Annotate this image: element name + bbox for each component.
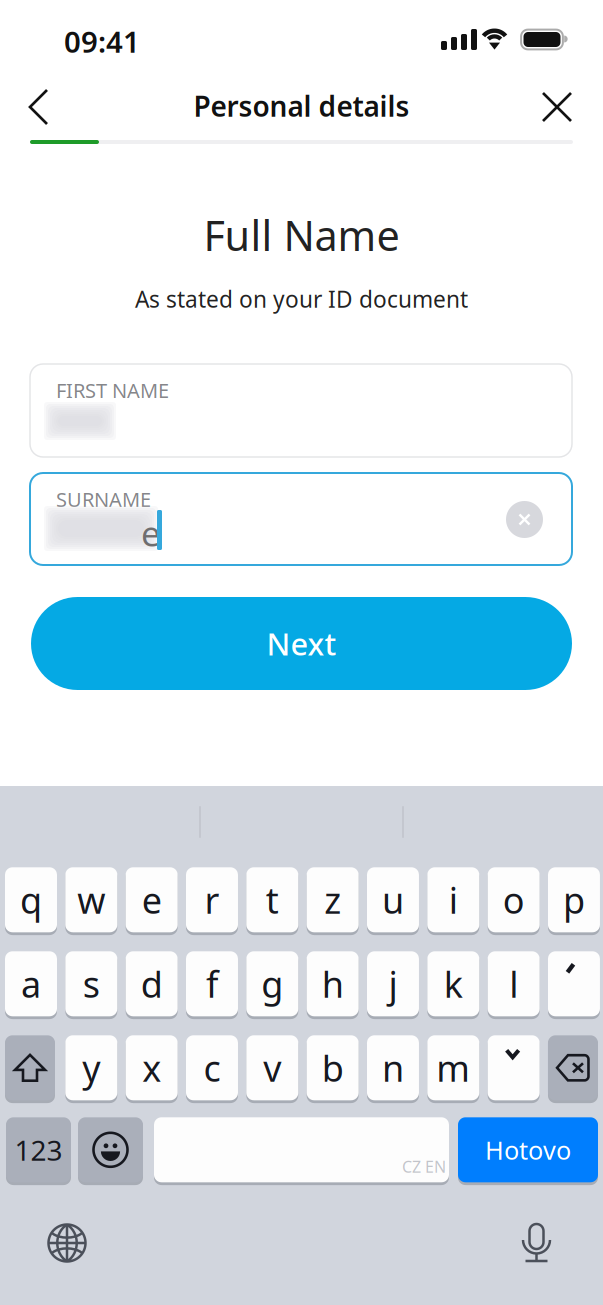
staticText: u xyxy=(382,876,404,924)
button[interactable]: Delete xyxy=(548,1036,598,1101)
button[interactable]: Acute accent xyxy=(548,952,600,1017)
staticText: y xyxy=(82,1044,100,1092)
button[interactable]: w xyxy=(65,868,117,933)
staticText: SURNAME xyxy=(56,486,151,513)
button[interactable]: k xyxy=(427,952,479,1017)
button[interactable]: s xyxy=(65,952,117,1017)
button[interactable]: u xyxy=(367,868,419,933)
button[interactable]: d xyxy=(126,952,178,1017)
button[interactable]: x xyxy=(126,1036,178,1101)
button[interactable]: t xyxy=(246,868,298,933)
staticText: e xyxy=(142,876,162,924)
staticText: c xyxy=(203,1044,220,1092)
staticText: CZ EN xyxy=(402,1156,446,1177)
button[interactable]: p xyxy=(548,868,600,933)
staticText: e xyxy=(141,510,161,556)
button[interactable]: Close xyxy=(531,83,583,131)
staticText: x xyxy=(142,1044,161,1092)
button[interactable]: Back xyxy=(14,80,64,134)
button[interactable]: c xyxy=(186,1036,238,1101)
staticText: a xyxy=(21,960,41,1008)
button[interactable]: r xyxy=(186,868,238,933)
staticText: n xyxy=(382,1044,404,1092)
button[interactable]: Dictate xyxy=(521,1220,552,1263)
button[interactable]: m xyxy=(427,1036,479,1101)
staticText: Next xyxy=(266,623,336,664)
staticText: s xyxy=(83,960,100,1008)
staticText: 123 xyxy=(14,1131,62,1168)
button[interactable]: h xyxy=(307,952,359,1017)
staticText: f xyxy=(206,960,218,1008)
button[interactable]: v xyxy=(246,1036,298,1101)
button[interactable]: o xyxy=(488,868,540,933)
staticText: As stated on your ID document xyxy=(135,284,468,314)
staticText: i xyxy=(449,876,458,924)
button[interactable]: l xyxy=(488,952,540,1017)
button[interactable]: Space xyxy=(154,1118,449,1183)
staticText: Full Name xyxy=(203,208,399,262)
staticText: t xyxy=(266,876,279,924)
staticText: FIRST NAME xyxy=(56,377,169,404)
staticText: m xyxy=(436,1044,470,1092)
staticText: l xyxy=(509,960,518,1008)
button[interactable]: 123 xyxy=(6,1118,71,1183)
staticText: r xyxy=(204,876,219,924)
staticText: Personal details xyxy=(193,87,409,125)
button[interactable]: Emoji xyxy=(78,1118,143,1183)
button[interactable]: Next xyxy=(31,597,572,690)
button[interactable]: f xyxy=(186,952,238,1017)
button[interactable]: g xyxy=(246,952,298,1017)
button[interactable]: y xyxy=(65,1036,117,1101)
button[interactable] xyxy=(30,364,572,457)
staticText: d xyxy=(141,960,163,1008)
button[interactable]: z xyxy=(307,868,359,933)
staticText: 09:41 xyxy=(64,22,140,61)
staticText: h xyxy=(322,960,344,1008)
staticText: Hotovo xyxy=(485,1133,571,1167)
staticText: z xyxy=(324,876,341,924)
staticText: g xyxy=(261,960,283,1008)
button[interactable]: Hotovo xyxy=(458,1118,598,1183)
staticText: p xyxy=(563,876,585,924)
button[interactable]: Caron xyxy=(488,1036,540,1101)
staticText: k xyxy=(444,960,463,1008)
button[interactable]: j xyxy=(367,952,419,1017)
button[interactable]: e xyxy=(126,868,178,933)
staticText: v xyxy=(263,1044,281,1092)
button[interactable] xyxy=(30,473,572,565)
button[interactable]: i xyxy=(427,868,479,933)
staticText: q xyxy=(20,876,42,924)
staticText: j xyxy=(388,960,397,1008)
button[interactable]: b xyxy=(307,1036,359,1101)
button[interactable]: Shift xyxy=(5,1036,55,1101)
staticText: b xyxy=(322,1044,344,1092)
staticText: o xyxy=(503,876,525,924)
button[interactable]: a xyxy=(5,952,57,1017)
button[interactable]: Clear text xyxy=(506,501,543,538)
button[interactable]: n xyxy=(367,1036,419,1101)
button[interactable]: q xyxy=(5,868,57,933)
staticText: w xyxy=(77,876,105,924)
button[interactable]: Next keyboard xyxy=(47,1223,87,1263)
